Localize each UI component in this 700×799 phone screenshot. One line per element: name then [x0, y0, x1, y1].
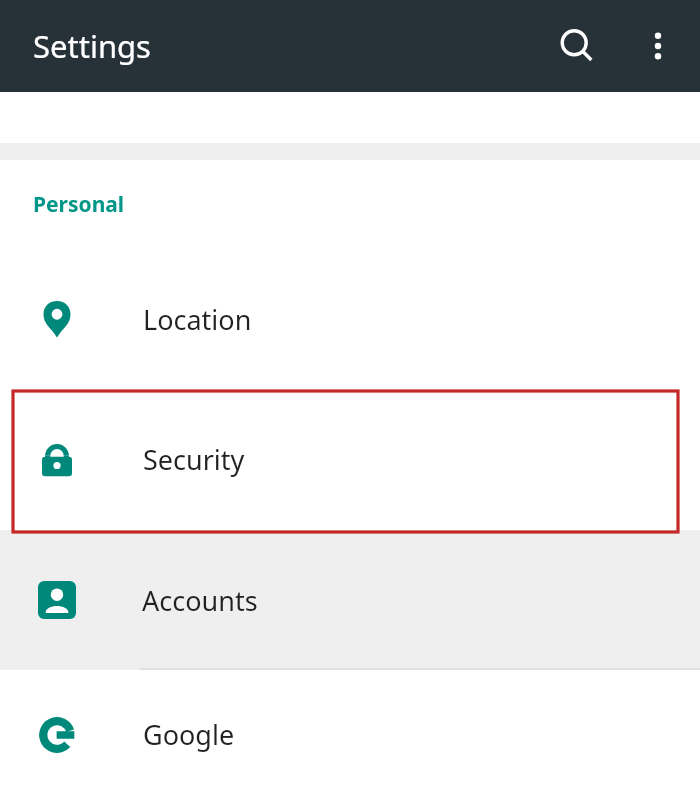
button[interactable]: Google	[0, 670, 700, 799]
button[interactable]: More options	[620, 8, 696, 84]
staticText: Settings	[33, 25, 151, 67]
staticText: Accounts	[142, 582, 258, 619]
button[interactable]: Accounts	[0, 530, 700, 670]
staticText: Google	[143, 716, 235, 753]
staticText: Security	[143, 441, 245, 478]
staticText: Location	[143, 301, 252, 338]
staticText: Personal	[33, 190, 125, 219]
button[interactable]: Search	[537, 6, 617, 86]
button[interactable]: Security	[0, 389, 700, 530]
button[interactable]: Location	[0, 249, 700, 389]
